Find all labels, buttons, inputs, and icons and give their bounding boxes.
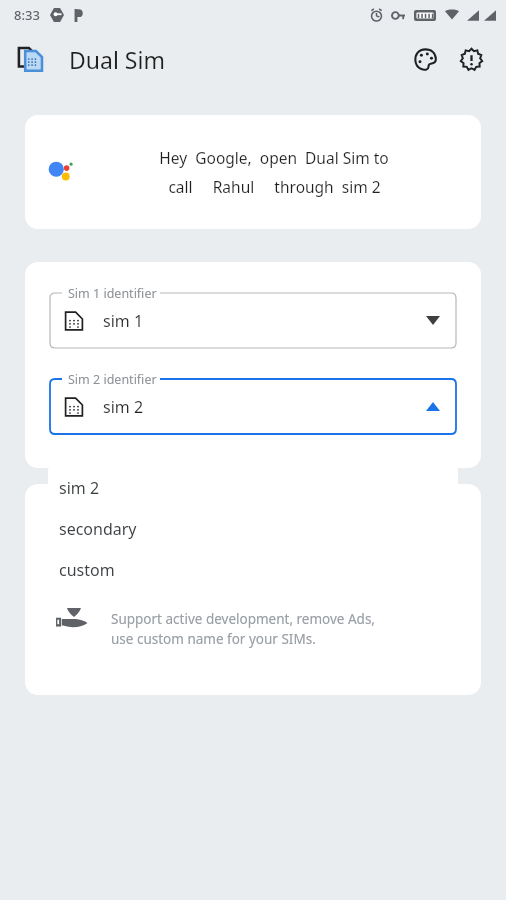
staticText: sim 2	[103, 396, 144, 418]
button[interactable]: Hey Google, open Dual Sim to	[25, 115, 481, 229]
staticText: custom	[59, 559, 115, 581]
staticText: Sim 1 identifier	[68, 285, 157, 302]
staticText: Dual Sim	[69, 44, 165, 75]
staticText: 8:33	[14, 6, 40, 24]
staticText: secondary	[59, 518, 137, 540]
button[interactable]: Sim 2 identifier	[50, 370, 456, 434]
staticText: sim 1	[103, 310, 144, 332]
staticText: sim 2	[59, 477, 100, 499]
button[interactable]: Extra features	[25, 484, 481, 695]
button[interactable]: About	[448, 36, 494, 82]
staticText: Hey Google, open Dual Sim to	[159, 147, 389, 168]
button[interactable]: Sim 1 identifier	[50, 284, 456, 348]
button[interactable]: Theme	[402, 36, 448, 82]
button[interactable]: sim 2	[48, 467, 458, 508]
staticText: Sim 2 identifier	[68, 371, 157, 388]
staticText: use custom name for your SIMs.	[111, 630, 316, 648]
button[interactable]: secondary	[48, 508, 458, 549]
button[interactable]: custom	[48, 549, 458, 590]
staticText: Support active development, remove Ads,	[111, 610, 375, 628]
staticText: call Rahul through sim 2	[168, 176, 381, 197]
